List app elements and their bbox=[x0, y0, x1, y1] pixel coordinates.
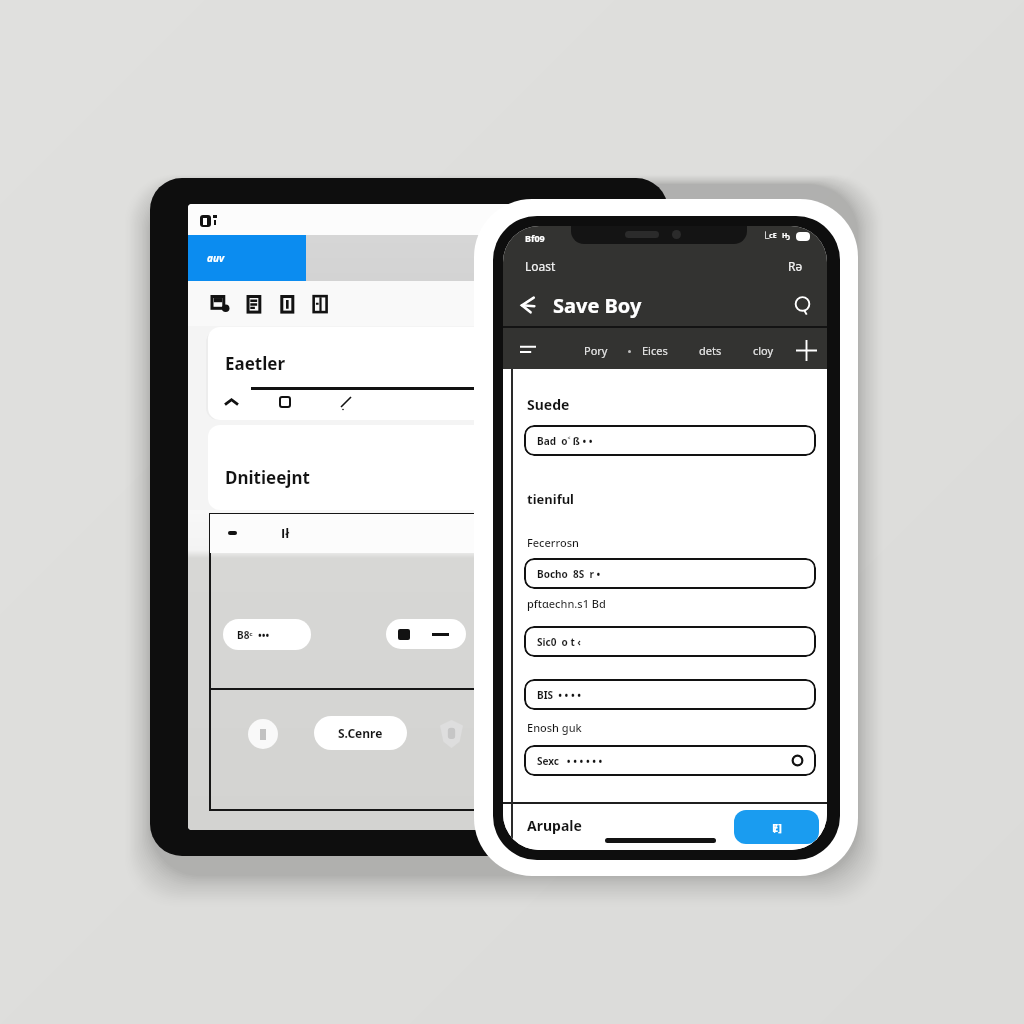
button[interactable]: Tool 2 bbox=[245, 295, 264, 314]
staticText: cloy bbox=[753, 343, 774, 358]
button[interactable]: Sic0 o t ‹ bbox=[524, 626, 816, 657]
button[interactable]: Note bbox=[277, 394, 293, 410]
staticText: auv bbox=[207, 251, 225, 265]
button[interactable]: Dnitieejnt bbox=[208, 425, 642, 510]
staticText: Loast bbox=[525, 258, 556, 274]
staticText: dets bbox=[699, 343, 722, 358]
button[interactable]: Tool 3 bbox=[278, 295, 297, 314]
button[interactable]: Ɇ] bbox=[734, 810, 819, 844]
button[interactable]: Search bbox=[789, 292, 815, 318]
staticText: Save Boy bbox=[553, 292, 642, 319]
button[interactable]: Collapse bbox=[223, 394, 239, 410]
staticText: Rə bbox=[788, 258, 803, 274]
button[interactable]: Tool 1 bbox=[212, 295, 231, 314]
staticText: Ԣ bbox=[782, 231, 791, 241]
button[interactable]: Eices bbox=[635, 338, 675, 363]
button[interactable]: Menu bbox=[517, 339, 539, 361]
staticText: Sexc • • • • • • bbox=[537, 754, 603, 768]
button[interactable]: Back bbox=[515, 292, 541, 318]
button[interactable]: Shield bbox=[440, 720, 463, 748]
button[interactable]: Bocho 8S r • bbox=[524, 558, 816, 589]
staticText: ⎿ᴄE bbox=[762, 231, 777, 241]
staticText: pftɑechn.s1 Bd bbox=[527, 596, 606, 611]
staticText: Bocho 8S r • bbox=[537, 567, 601, 581]
button[interactable]: Bad o˂ ß • • bbox=[524, 425, 816, 456]
button[interactable]: BIS • • • • bbox=[524, 679, 816, 710]
button[interactable]: Eaetler bbox=[208, 327, 642, 420]
button[interactable]: Add bbox=[794, 338, 818, 362]
button[interactable]: dets bbox=[692, 338, 729, 363]
staticText: Sic0 o t ‹ bbox=[537, 635, 582, 649]
staticText: Ɇ] bbox=[772, 820, 782, 835]
staticText: Bad o˂ ß • • bbox=[537, 434, 593, 448]
button[interactable]: Pory bbox=[577, 338, 615, 363]
staticText: BIS • • • • bbox=[537, 688, 582, 702]
staticText: Enosh guk bbox=[527, 720, 582, 735]
staticText: Fecerrosn bbox=[527, 535, 579, 550]
button[interactable] bbox=[386, 619, 466, 649]
button[interactable]: Tool 4 bbox=[311, 295, 330, 314]
staticText: Eaetler bbox=[225, 352, 286, 375]
button[interactable]: Bookmark bbox=[248, 719, 278, 749]
button[interactable]: B8ᶜ ••• bbox=[223, 619, 311, 650]
staticText: Іł bbox=[281, 524, 290, 542]
button[interactable]: S.Cenre bbox=[314, 716, 407, 750]
button[interactable]: auv bbox=[188, 235, 306, 281]
staticText: Arupale bbox=[527, 816, 582, 835]
staticText: Pory bbox=[584, 343, 608, 358]
staticText: S.Cenre bbox=[338, 725, 383, 741]
button[interactable]: More bbox=[338, 394, 354, 410]
staticText: Bf09 bbox=[525, 232, 545, 244]
staticText: Eices bbox=[642, 343, 668, 358]
button[interactable]: Sexc • • • • • • bbox=[524, 745, 816, 776]
staticText: B8ᶜ ••• bbox=[237, 628, 270, 642]
staticText: Dnitieejnt bbox=[225, 466, 310, 489]
button[interactable]: cloy bbox=[746, 338, 781, 363]
staticText: tieniful bbox=[527, 490, 574, 508]
staticText: Suede bbox=[527, 395, 570, 414]
